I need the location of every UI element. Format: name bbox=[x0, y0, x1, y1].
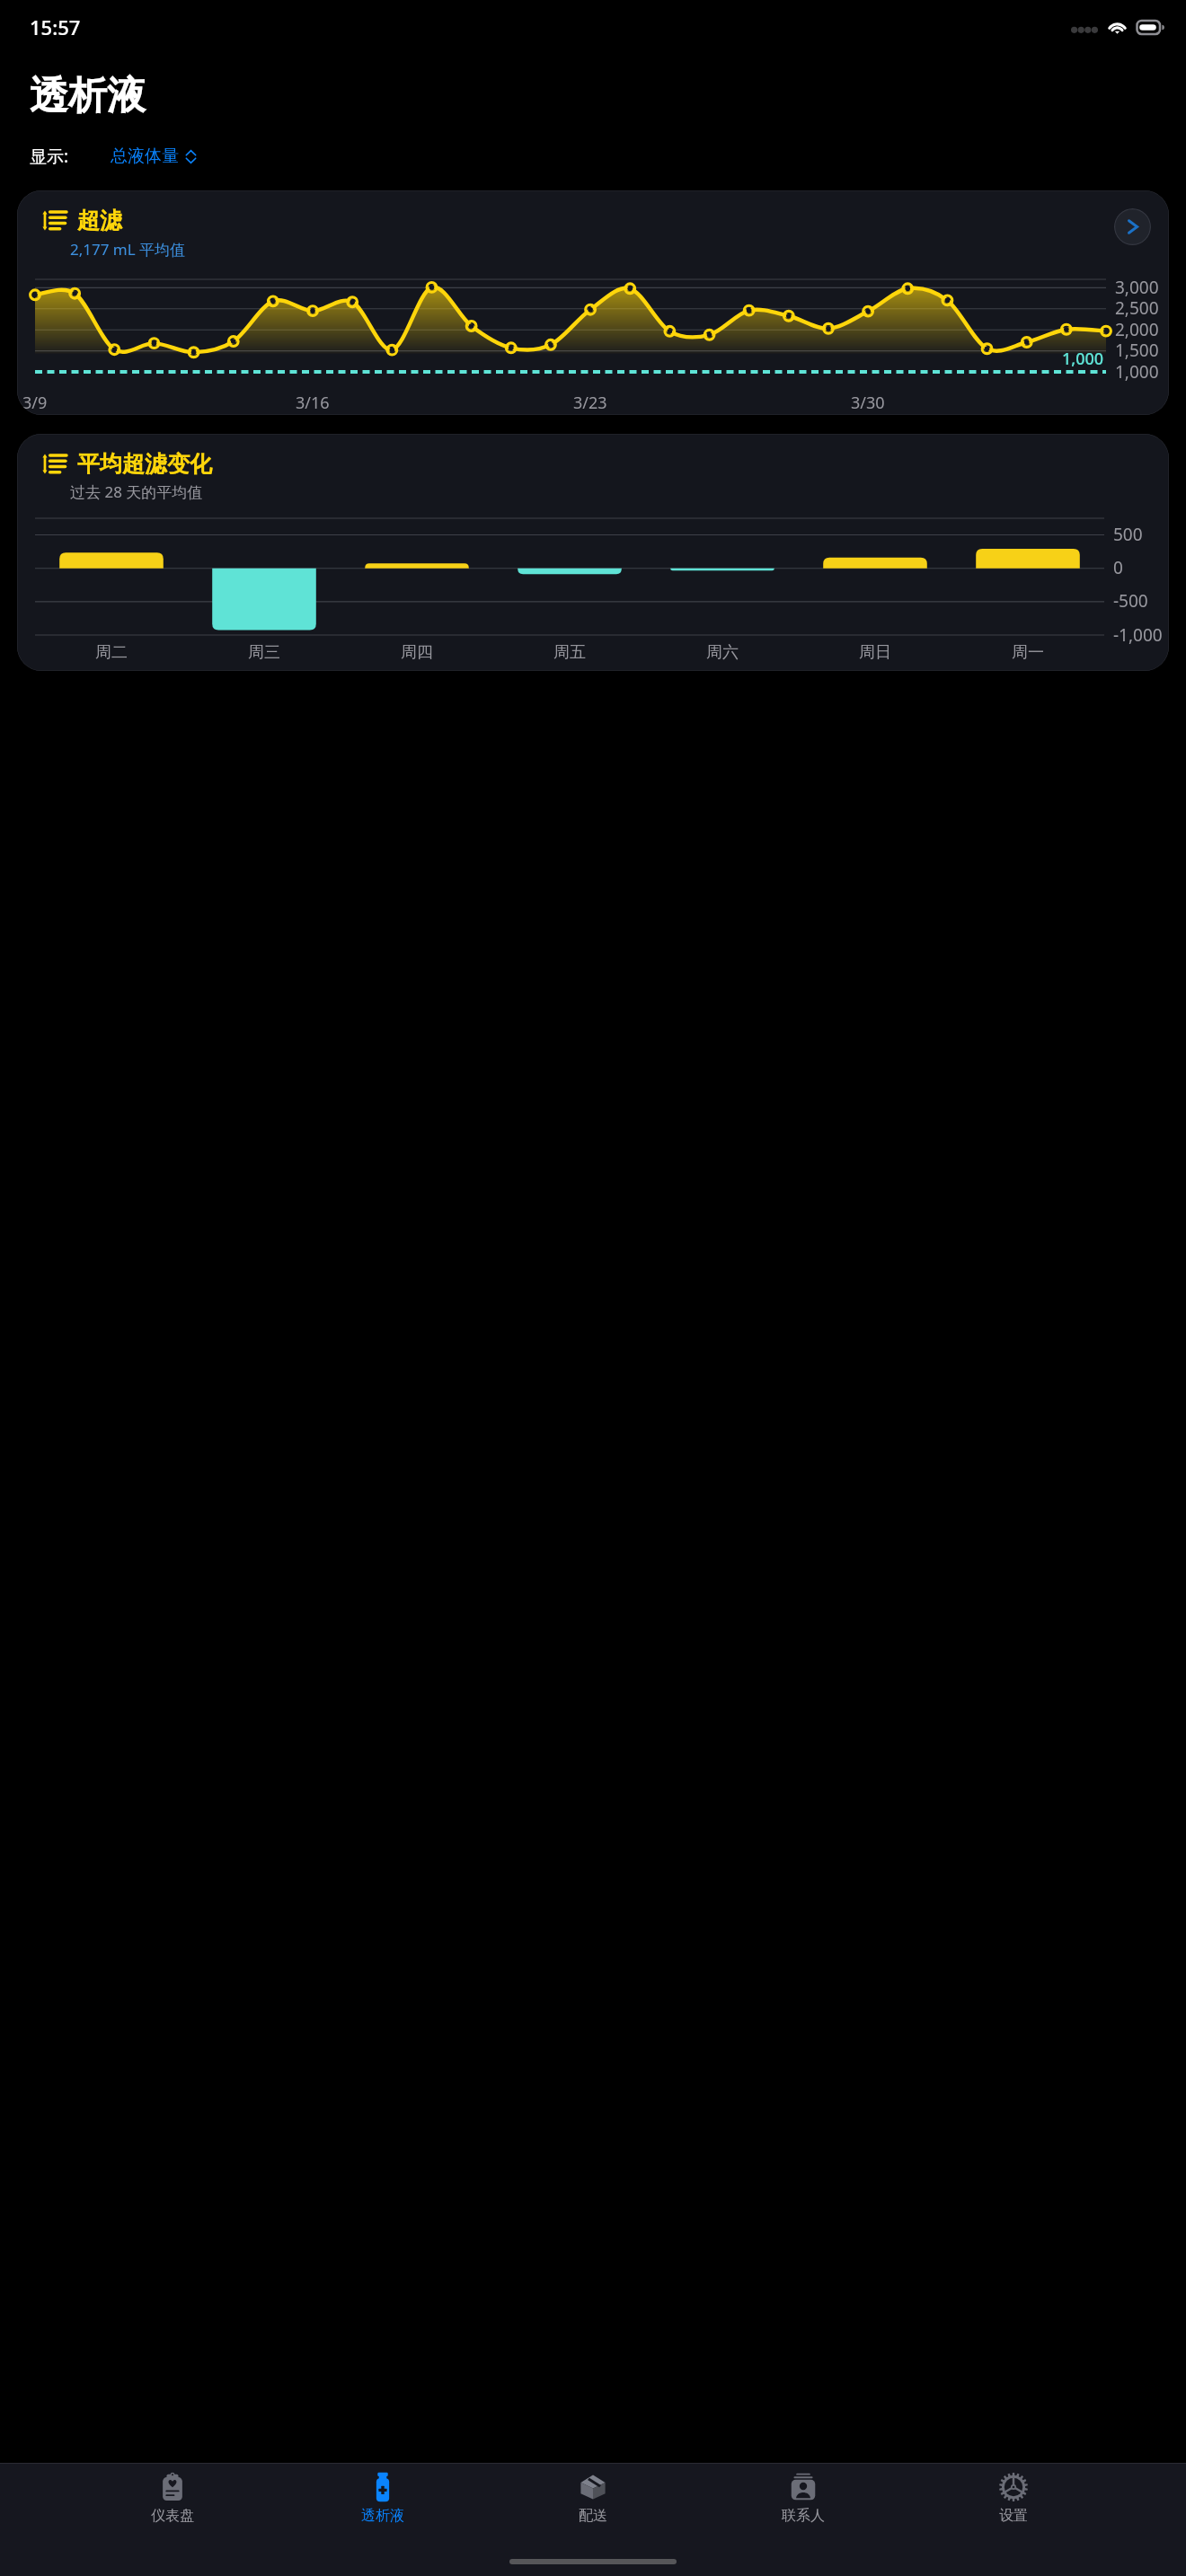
staticText: 透析液 bbox=[30, 72, 146, 120]
staticText: 2,500 bbox=[1115, 296, 1159, 320]
staticText: 过去 28 天的平均值 bbox=[70, 481, 203, 502]
button[interactable]: 平均超滤变化 bbox=[17, 434, 1169, 671]
staticText: 周二 bbox=[95, 642, 128, 663]
staticText: 3/23 bbox=[573, 392, 607, 414]
staticText: 仪表盘 bbox=[151, 2507, 194, 2525]
staticText: 超滤 bbox=[77, 207, 122, 234]
button[interactable]: 查看详情 bbox=[1114, 208, 1151, 245]
button[interactable]: 联系人 bbox=[766, 2472, 841, 2525]
button[interactable]: 总液体量 bbox=[109, 142, 199, 171]
button[interactable]: 超滤 bbox=[17, 190, 1169, 415]
staticText: 配送 bbox=[579, 2507, 607, 2525]
staticText: 周三 bbox=[248, 642, 280, 663]
staticText: 周一 bbox=[1012, 642, 1044, 663]
staticText: 周六 bbox=[706, 642, 739, 663]
staticText: 1,000 bbox=[1062, 348, 1104, 370]
staticText: 0 bbox=[1113, 556, 1123, 579]
staticText: 3,000 bbox=[1115, 276, 1159, 299]
button[interactable]: 配送 bbox=[555, 2472, 631, 2525]
button[interactable]: 设置 bbox=[976, 2472, 1051, 2525]
staticText: 平均超滤变化 bbox=[77, 450, 212, 478]
staticText: 3/9 bbox=[22, 392, 48, 414]
staticText: 周日 bbox=[859, 642, 891, 663]
staticText: 设置 bbox=[999, 2507, 1028, 2525]
staticText: 2,177 mL 平均值 bbox=[70, 239, 186, 260]
staticText: 15:57 bbox=[30, 13, 81, 40]
staticText: 3/16 bbox=[296, 392, 330, 414]
staticText: 总液体量 bbox=[111, 146, 179, 167]
staticText: 周五 bbox=[553, 642, 586, 663]
button[interactable]: 仪表盘 bbox=[135, 2472, 210, 2525]
staticText: -500 bbox=[1113, 589, 1148, 613]
staticText: 2,000 bbox=[1115, 318, 1159, 341]
staticText: 显示: bbox=[30, 145, 69, 168]
staticText: 1,500 bbox=[1115, 339, 1159, 362]
staticText: -1,000 bbox=[1113, 623, 1163, 647]
staticText: 1,000 bbox=[1115, 360, 1159, 384]
staticText: 联系人 bbox=[782, 2507, 825, 2525]
staticText: 周四 bbox=[401, 642, 433, 663]
button[interactable]: 透析液 bbox=[345, 2472, 420, 2525]
staticText: 3/30 bbox=[851, 392, 885, 414]
staticText: 透析液 bbox=[361, 2507, 404, 2525]
staticText: 500 bbox=[1113, 523, 1143, 546]
